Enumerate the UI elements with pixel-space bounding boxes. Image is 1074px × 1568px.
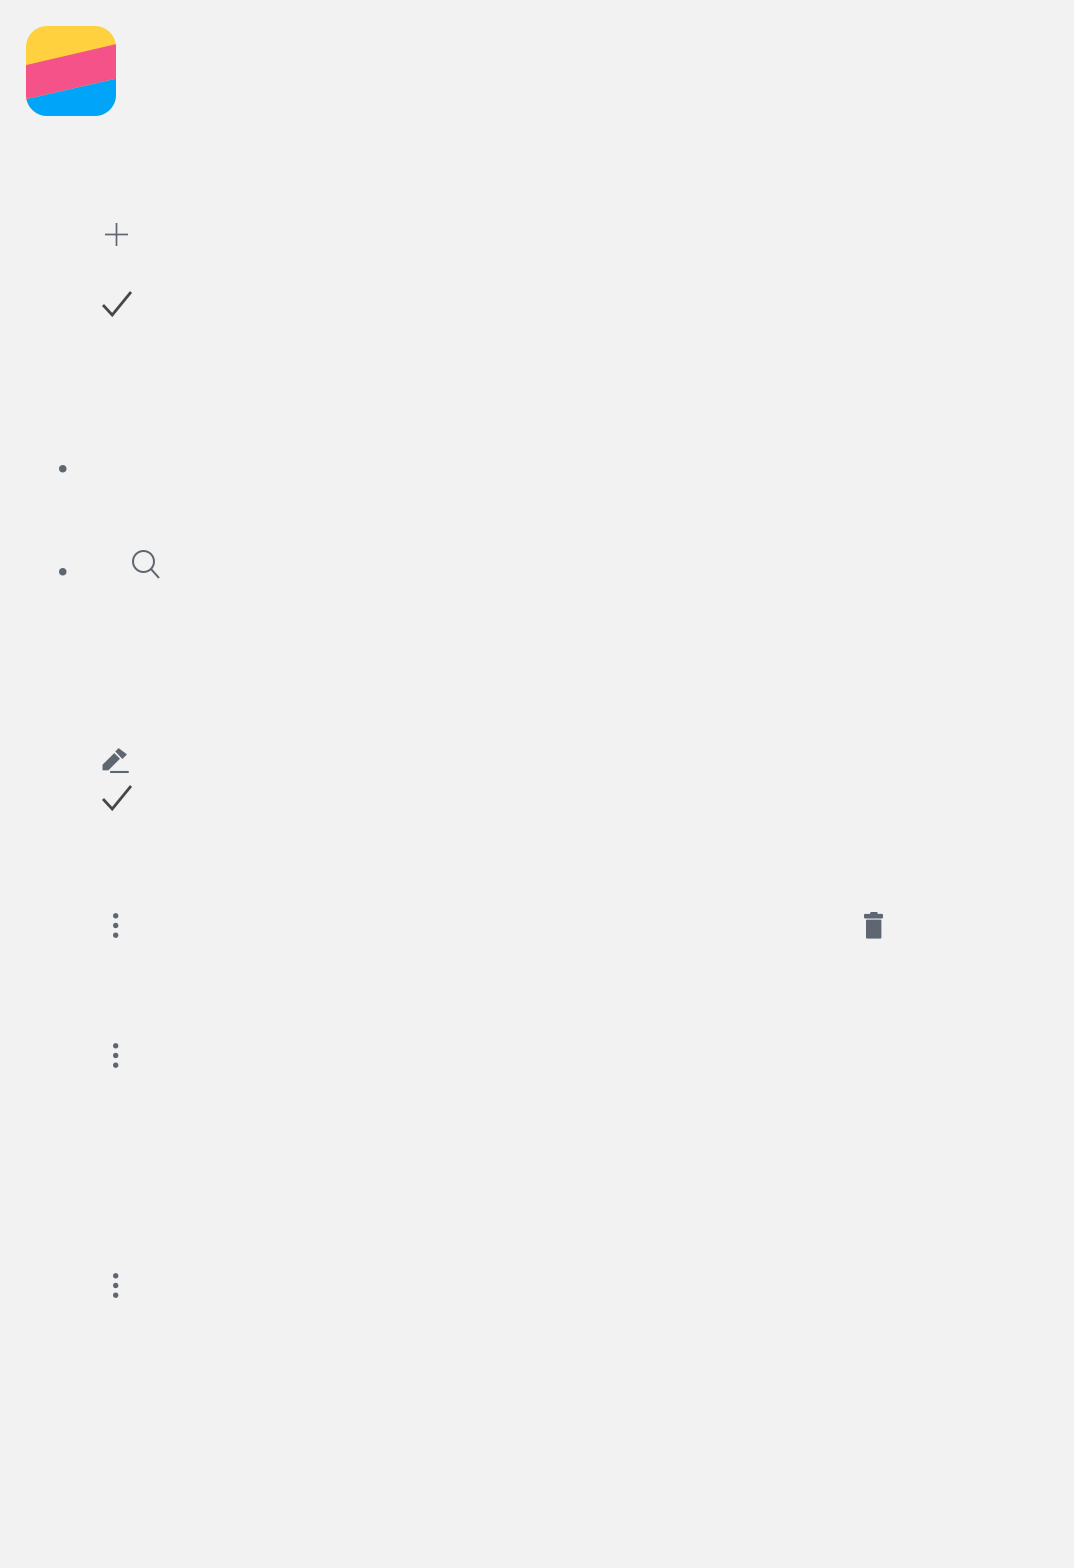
button[interactable]: Delete [864,912,883,939]
button[interactable]: Edit [102,747,129,774]
button[interactable]: Add [105,223,128,246]
button[interactable]: Mark complete [102,291,132,316]
button[interactable]: More options [113,913,118,938]
button[interactable]: Done [102,785,132,810]
button[interactable]: Search [133,551,160,578]
button[interactable]: More options [113,1273,118,1298]
button[interactable]: More options [113,1043,118,1068]
